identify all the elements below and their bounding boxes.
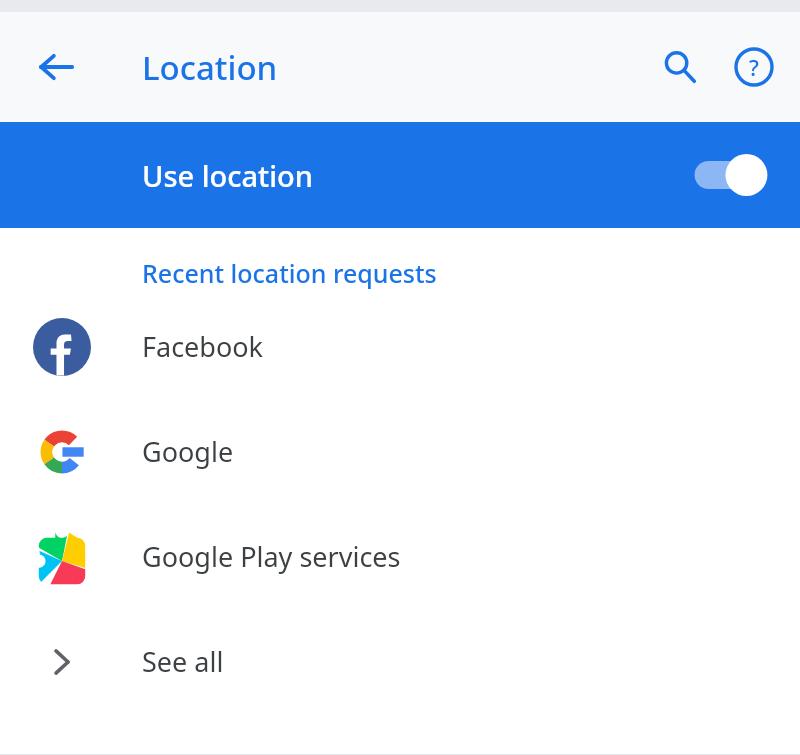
staticText: Recent location requests xyxy=(142,256,437,290)
staticText: Google xyxy=(142,433,234,470)
staticText: See all xyxy=(142,643,224,680)
staticText: ? xyxy=(749,52,759,82)
button[interactable]: Google Play services xyxy=(0,504,800,609)
other: See all xyxy=(33,633,91,691)
button[interactable]: See all xyxy=(0,609,800,714)
staticText: Use location xyxy=(142,156,313,195)
button[interactable]: Use location xyxy=(0,122,800,228)
button[interactable]: Google xyxy=(0,399,800,504)
staticText: Location xyxy=(142,45,278,90)
button[interactable]: Search xyxy=(648,35,712,99)
button[interactable]: Facebook xyxy=(0,294,800,399)
button[interactable]: Back xyxy=(26,37,86,97)
staticText: Google Play services xyxy=(142,538,401,575)
staticText: Facebook xyxy=(142,328,264,365)
button[interactable]: Use location toggle xyxy=(684,147,772,203)
button[interactable]: Help xyxy=(722,35,786,99)
